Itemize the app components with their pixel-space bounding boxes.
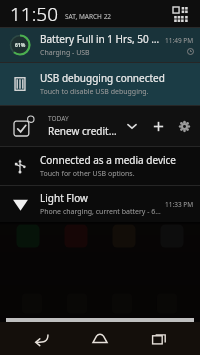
button[interactable]: Back xyxy=(23,322,59,355)
button[interactable]: Add task xyxy=(145,113,171,139)
button[interactable]: TODAY xyxy=(0,106,200,146)
staticText: Renew credit card xyxy=(48,124,119,138)
staticText: Light Flow xyxy=(40,191,88,205)
staticText: Charging - USB xyxy=(40,48,90,58)
staticText: Battery Full in 1 Hrs, 50 mi.. xyxy=(40,32,161,46)
staticText: 11:33 PM xyxy=(165,200,194,209)
button[interactable]: 61% xyxy=(0,28,200,62)
button[interactable]: Settings xyxy=(171,113,197,139)
staticText: Phone charging, current battery - 61% xyxy=(40,207,161,217)
staticText: Touch for other USB options. xyxy=(40,169,135,179)
staticText: TODAY xyxy=(48,114,69,123)
button[interactable]: Home xyxy=(82,322,118,355)
button[interactable]: Expand xyxy=(119,113,145,139)
button[interactable]: Light Flow xyxy=(0,186,200,222)
button[interactable]: USB debugging connected xyxy=(0,63,200,105)
staticText: 11:49 PM xyxy=(165,36,194,45)
button[interactable]: Quick settings xyxy=(168,2,192,26)
staticText: 11:50 xyxy=(10,1,59,27)
staticText: 61% xyxy=(15,42,26,49)
staticText: USB debugging connected xyxy=(40,71,165,85)
staticText: Connected as a media device xyxy=(40,153,176,167)
button[interactable]: Recent apps xyxy=(141,322,177,355)
staticText: Touch to disable USB debugging. xyxy=(40,87,149,97)
staticText: SAT, MARCH 22 xyxy=(65,12,112,21)
button[interactable]: Connected as a media device xyxy=(0,147,200,185)
